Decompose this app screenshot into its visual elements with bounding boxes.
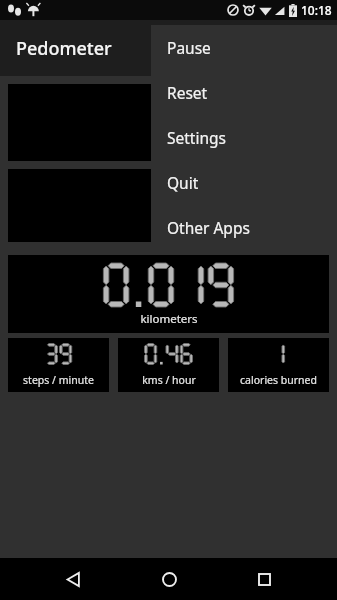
staticText: kilometers — [140, 311, 198, 327]
button[interactable]: Settings — [151, 115, 337, 160]
button[interactable]: kilometers — [8, 255, 329, 333]
button[interactable]: Reset — [151, 70, 337, 115]
button[interactable] — [8, 169, 329, 242]
staticText: steps / minute — [23, 373, 94, 387]
staticText: Settings — [167, 127, 226, 148]
staticText: Pedometer — [16, 36, 112, 61]
button[interactable]: Quit — [151, 160, 337, 205]
staticText: Quit — [167, 172, 199, 193]
button[interactable]: Other Apps — [151, 205, 337, 250]
staticText: Pause — [167, 37, 211, 58]
button[interactable]: steps / minute — [8, 338, 109, 392]
button[interactable]: Home — [146, 558, 192, 600]
button[interactable]: calories burned — [228, 338, 329, 392]
staticText: 10:18 — [301, 2, 332, 18]
button[interactable]: Recent apps — [241, 558, 287, 600]
staticText: Other Apps — [167, 217, 250, 238]
button[interactable]: kms / hour — [118, 338, 219, 392]
staticText: kms / hour — [142, 373, 196, 387]
staticText: calories burned — [240, 373, 317, 387]
staticText: Reset — [167, 82, 208, 103]
button[interactable]: Back — [50, 558, 96, 600]
button[interactable] — [8, 84, 329, 161]
button[interactable]: Pause — [151, 25, 337, 70]
